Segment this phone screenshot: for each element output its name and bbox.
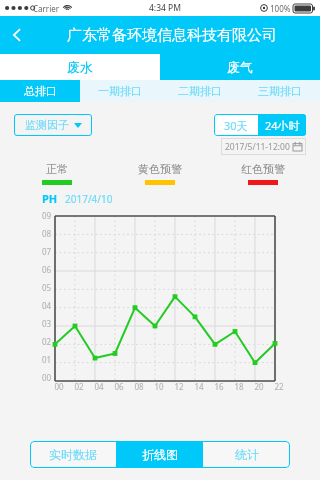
staticText: 22 — [274, 381, 284, 392]
staticText: 12 — [174, 381, 184, 392]
staticText: 30天 — [224, 118, 248, 133]
staticText: 04 — [94, 381, 104, 392]
staticText: 2017/4/10 — [65, 192, 113, 206]
staticText: 00 — [42, 372, 52, 383]
button[interactable]: 实时数据 — [30, 441, 116, 468]
staticText: 一期排口 — [98, 84, 142, 98]
staticText: 06 — [114, 381, 124, 392]
staticText: 三期排口 — [258, 84, 302, 98]
button[interactable]: 废气 — [160, 54, 320, 80]
button[interactable]: 总排口 — [0, 80, 80, 102]
staticText: 18 — [234, 381, 244, 392]
button[interactable]: 二期排口 — [160, 80, 240, 102]
button[interactable]: 24小时 — [258, 114, 306, 136]
staticText: 红色预警 — [241, 162, 285, 176]
button[interactable]: 一期排口 — [80, 80, 160, 102]
staticText: 14 — [194, 381, 204, 392]
button[interactable]: 废水 — [0, 54, 160, 80]
button[interactable]: 2017/5/11-12:00 — [225, 138, 302, 155]
staticText: 24小时 — [265, 118, 300, 133]
staticText: 09 — [42, 210, 52, 221]
button[interactable]: 监测因子 — [14, 114, 92, 136]
staticText: 06 — [42, 264, 52, 275]
staticText: 监测因子 — [25, 118, 69, 132]
staticText: 16 — [214, 381, 224, 392]
staticText: Carrier — [33, 3, 60, 14]
staticText: 02 — [42, 336, 52, 347]
staticText: 折线图 — [142, 447, 178, 462]
button[interactable]: 30天 — [214, 114, 258, 136]
staticText: 二期排口 — [178, 84, 222, 98]
staticText: 10 — [154, 381, 164, 392]
staticText: 废水 — [67, 59, 93, 75]
staticText: 20 — [254, 381, 264, 392]
staticText: 07 — [42, 246, 52, 257]
staticText: 01 — [42, 354, 52, 365]
staticText: PH — [42, 191, 58, 206]
staticText: 02 — [74, 381, 84, 392]
staticText: 总排口 — [24, 84, 57, 98]
button[interactable]: Back — [0, 18, 34, 52]
staticText: 08 — [42, 228, 52, 239]
staticText: 03 — [42, 318, 52, 329]
staticText: 04 — [42, 300, 52, 311]
staticText: 05 — [42, 282, 52, 293]
staticText: 广东常备环境信息科技有限公司 — [67, 26, 277, 45]
button[interactable]: 三期排口 — [240, 80, 320, 102]
staticText: 00 — [54, 381, 64, 392]
staticText: 统计 — [235, 447, 259, 462]
button[interactable]: 折线图 — [116, 441, 203, 468]
button[interactable]: 统计 — [203, 441, 290, 468]
staticText: 黄色预警 — [138, 162, 182, 176]
staticText: 08 — [134, 381, 144, 392]
staticText: 100% — [270, 3, 291, 14]
staticText: 实时数据 — [49, 447, 97, 462]
staticText: 2017/5/11-12:00 — [225, 141, 290, 153]
staticText: 废气 — [227, 59, 253, 75]
staticText: 正常 — [46, 162, 68, 176]
staticText: 4:34 PM — [149, 2, 182, 14]
